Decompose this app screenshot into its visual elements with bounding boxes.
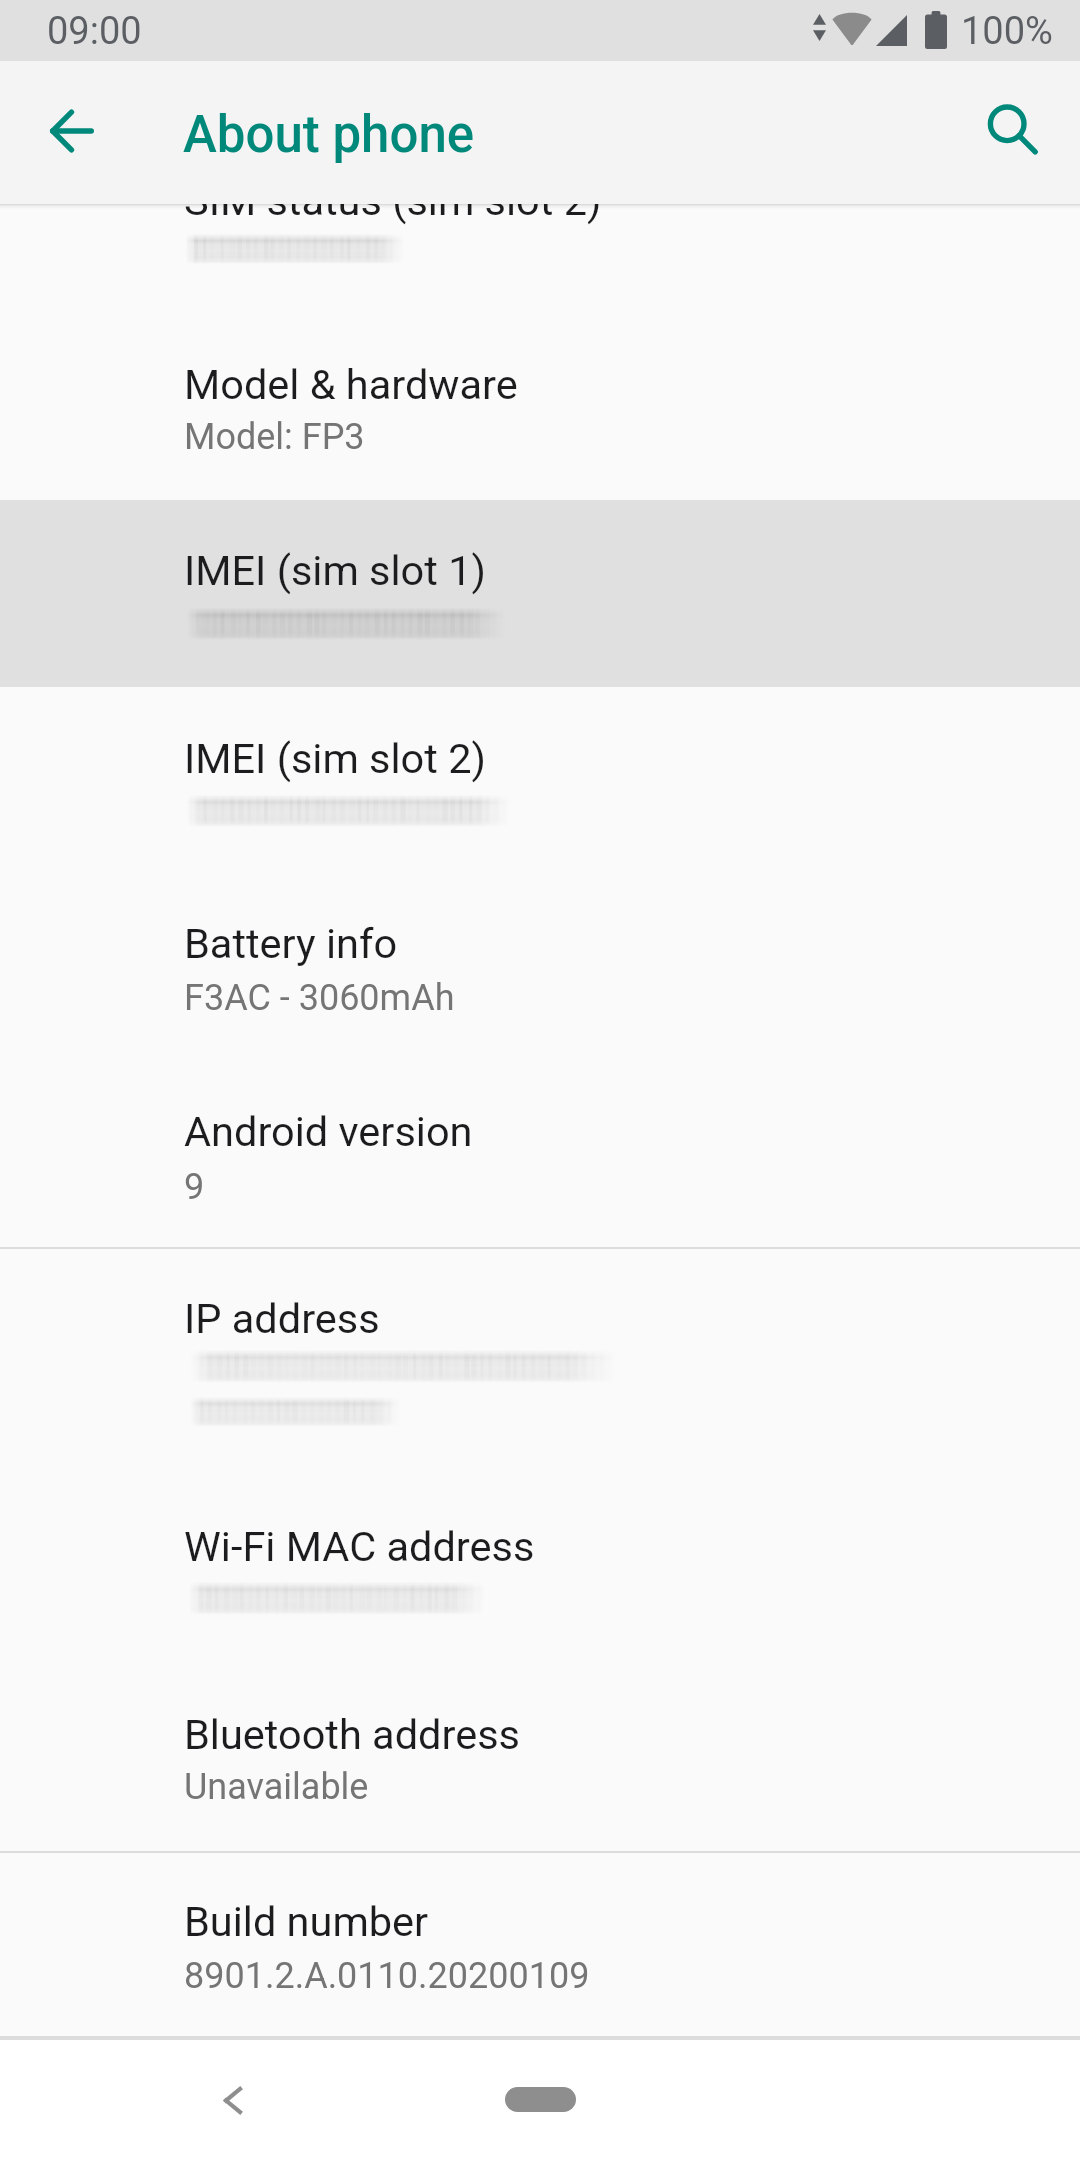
- button[interactable]: [0, 1664, 1080, 1851]
- button[interactable]: Back: [185, 2052, 281, 2148]
- staticText: IMEI (sim slot 1): [184, 546, 486, 595]
- staticText: IP address: [184, 1294, 380, 1343]
- staticText: Build number: [184, 1897, 429, 1946]
- staticText: Model & hardware: [184, 360, 518, 409]
- staticText: Bluetooth address: [184, 1710, 520, 1759]
- button[interactable]: [0, 1477, 1080, 1664]
- button[interactable]: Search: [964, 83, 1060, 179]
- staticText: About phone: [183, 105, 475, 165]
- staticText: F3AC - 3060mAh: [184, 977, 455, 1019]
- button[interactable]: [0, 687, 1080, 874]
- staticText: 09:00: [47, 9, 142, 54]
- staticText: Model: FP3: [184, 416, 365, 458]
- staticText: 100%: [961, 9, 1053, 54]
- staticText: Unavailable: [184, 1766, 369, 1808]
- button[interactable]: [0, 313, 1080, 500]
- button[interactable]: [0, 874, 1080, 1061]
- staticText: SIM status (sim slot 2): [184, 176, 602, 225]
- staticText: IMEI (sim slot 2): [184, 734, 486, 783]
- staticText: 8901.2.A.0110.20200109: [184, 1955, 590, 1997]
- staticText: Battery info: [184, 919, 398, 968]
- button[interactable]: [0, 150, 1080, 337]
- staticText: Wi-Fi MAC address: [184, 1522, 535, 1571]
- staticText: Android version: [184, 1107, 473, 1156]
- staticText: 9: [184, 1166, 205, 1208]
- button[interactable]: [0, 500, 1080, 687]
- button[interactable]: [0, 1249, 1080, 1477]
- button[interactable]: Navigate up: [24, 83, 120, 179]
- button[interactable]: [0, 1061, 1080, 1248]
- button[interactable]: [0, 1853, 1080, 2036]
- button[interactable]: Home: [505, 2087, 576, 2112]
